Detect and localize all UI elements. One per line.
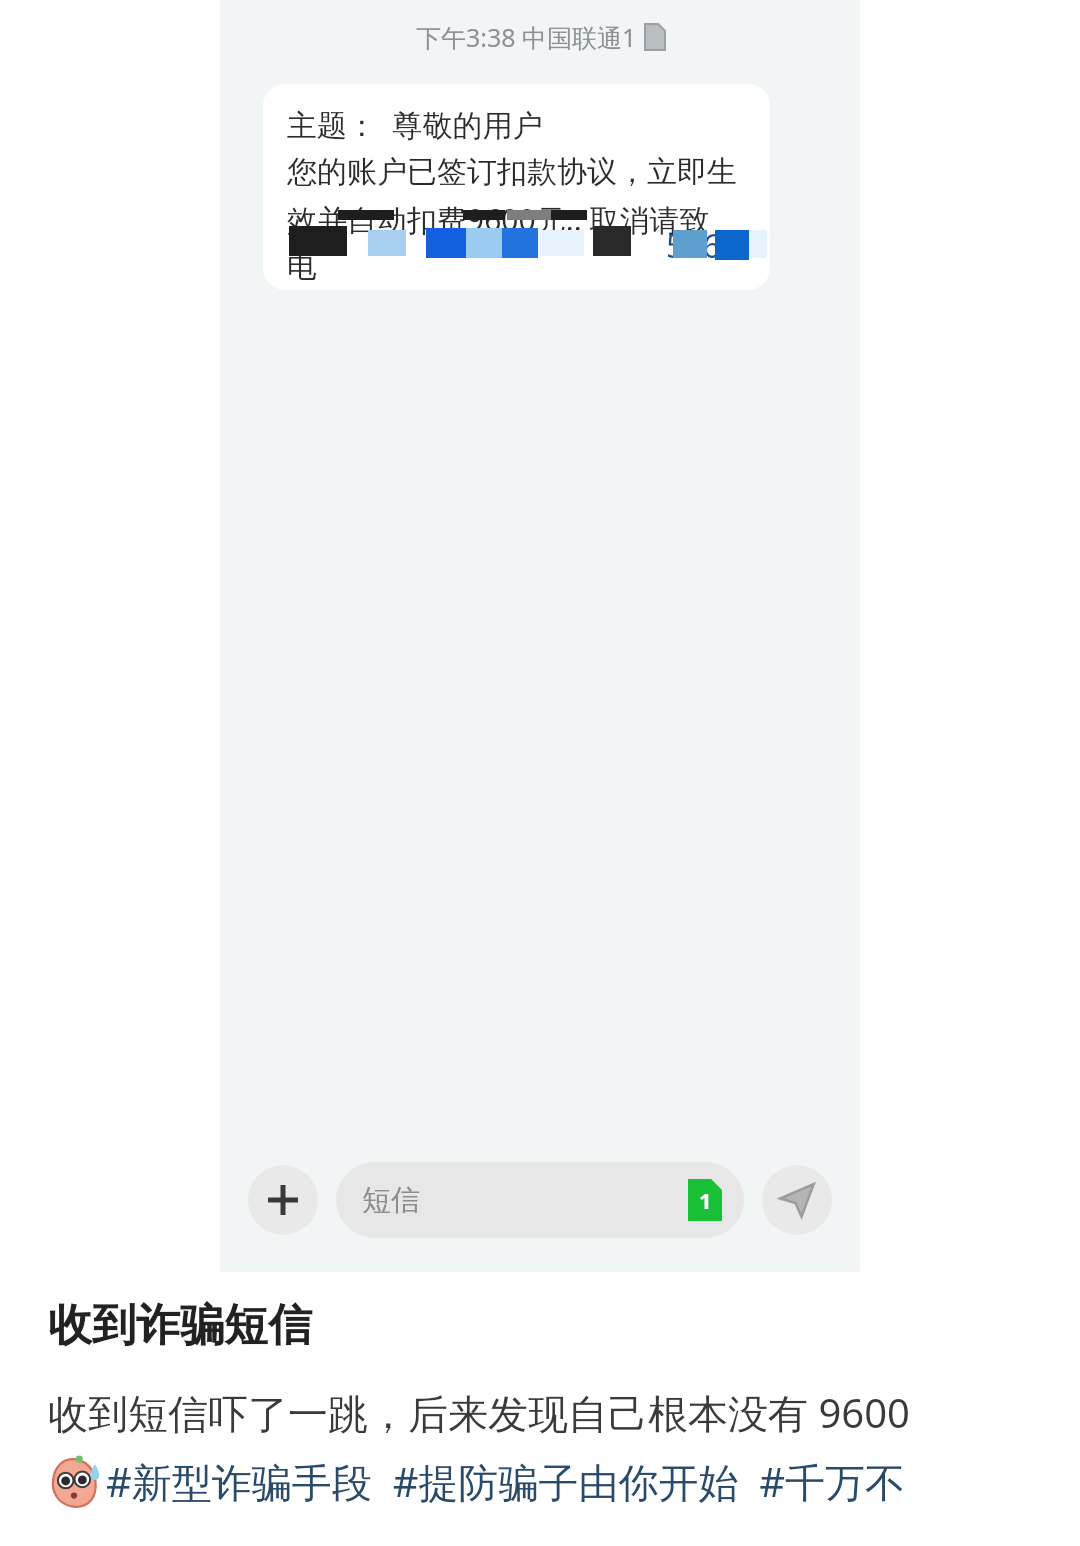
staticText: 主题： 尊敬的用户	[287, 104, 543, 145]
button[interactable]: Add attachment	[248, 1165, 318, 1235]
staticText: 短信	[362, 1182, 420, 1219]
button[interactable]: Send	[762, 1165, 832, 1235]
button[interactable]: 短信	[336, 1162, 744, 1238]
button[interactable]: 主题： 尊敬的用户	[263, 84, 770, 290]
staticText: 506	[666, 224, 721, 268]
staticText: 1	[699, 1185, 712, 1215]
staticText: 收到短信吓了一跳，后来发现自己根本没有 9600	[48, 1385, 910, 1440]
staticText: 您的账户已签订扣款协议，立即生	[287, 153, 737, 191]
staticText: #新型诈骗手段 #提防骗子由你开始 #千万不	[106, 1454, 906, 1509]
staticText: 电	[287, 248, 317, 286]
staticText: 收到诈骗短信	[48, 1298, 312, 1353]
staticText: 效并自动扣费9600元.. 取消请致	[287, 199, 710, 240]
staticText: 下午3:38 中国联通1	[416, 20, 637, 54]
